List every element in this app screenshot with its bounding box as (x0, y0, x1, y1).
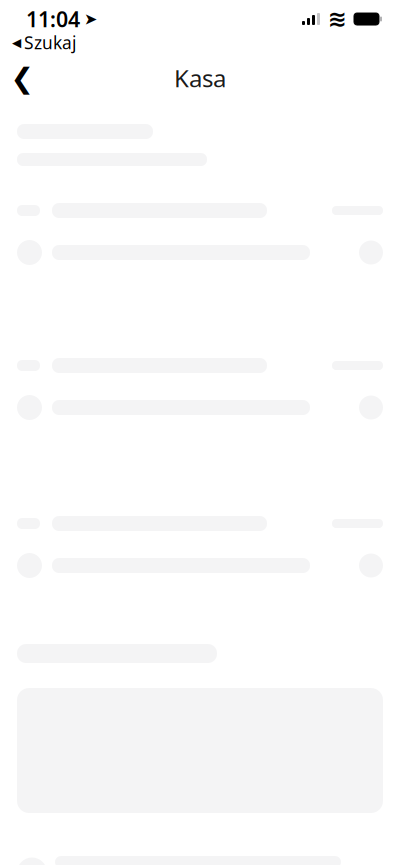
staticText: 11:04 (26, 5, 80, 33)
staticText: ❮ (10, 62, 33, 94)
staticText: ➤ (84, 10, 97, 28)
staticText: ◀ (12, 36, 21, 49)
button[interactable]: Back (0, 56, 44, 100)
staticText: Szukaj (24, 31, 76, 54)
staticText: ≋ (328, 6, 347, 32)
staticText: Kasa (174, 62, 226, 94)
